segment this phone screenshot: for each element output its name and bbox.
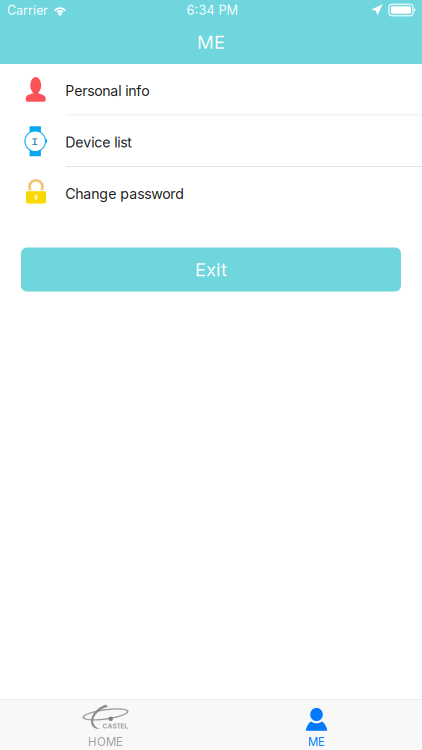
staticText: Device list: [65, 134, 132, 151]
button[interactable]: Device list: [0, 115, 422, 167]
staticText: Carrier: [7, 2, 48, 18]
staticText: CASTEL: [102, 722, 128, 730]
staticText: ME: [308, 735, 325, 749]
staticText: Change password: [65, 185, 184, 202]
button[interactable]: CASTEL: [0, 700, 211, 750]
button[interactable]: Personal info: [0, 64, 422, 115]
staticText: Personal info: [65, 82, 149, 99]
staticText: ME: [197, 31, 225, 53]
button[interactable]: ME: [211, 700, 422, 750]
button[interactable]: Change password: [0, 167, 422, 218]
button[interactable]: Exit: [21, 247, 401, 291]
staticText: Exit: [195, 258, 227, 281]
staticText: HOME: [88, 735, 123, 749]
staticText: 6:34 PM: [186, 2, 238, 18]
